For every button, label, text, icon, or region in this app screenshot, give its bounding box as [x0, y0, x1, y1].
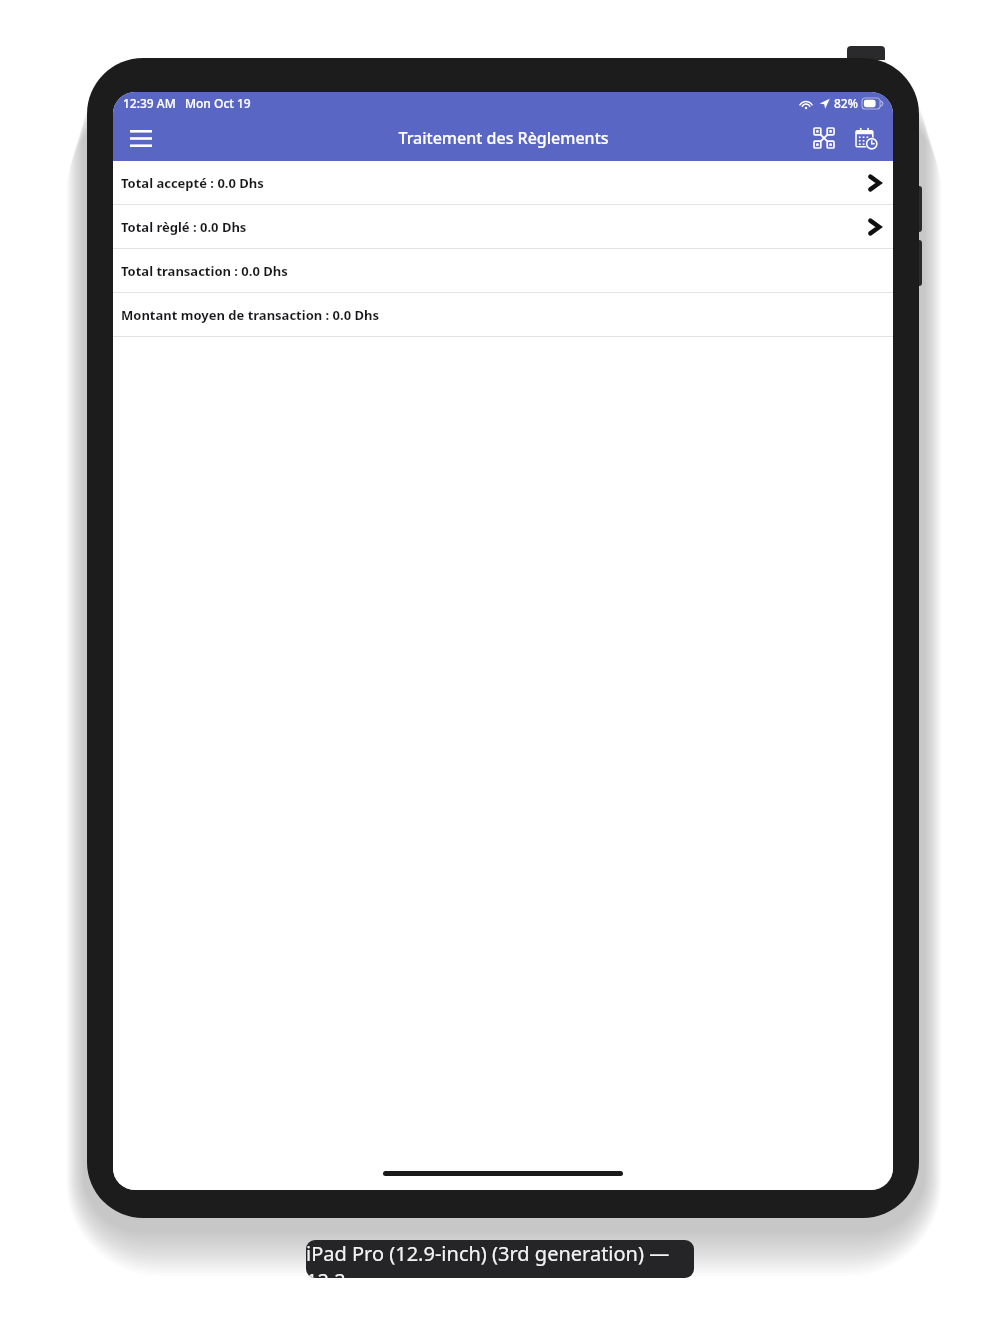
staticText: 12:39 AM: [123, 95, 176, 111]
button[interactable]: Total accepté : 0.0 Dhs: [113, 161, 893, 204]
button[interactable]: Total transaction : 0.0 Dhs: [113, 249, 893, 292]
staticText: iPad Pro (12.9-inch) (3rd generation) — …: [306, 1240, 694, 1278]
button[interactable]: Select date and time: [847, 119, 885, 157]
staticText: Montant moyen de transaction : 0.0 Dhs: [121, 306, 881, 324]
staticText: Mon Oct 19: [185, 95, 251, 111]
staticText: Total règlé : 0.0 Dhs: [121, 218, 868, 236]
button[interactable]: Total règlé : 0.0 Dhs: [113, 205, 893, 248]
button[interactable]: Open navigation menu: [121, 118, 161, 158]
staticText: Traitement des Règlements: [398, 127, 609, 149]
button[interactable]: Montant moyen de transaction : 0.0 Dhs: [113, 293, 893, 336]
staticText: Total accepté : 0.0 Dhs: [121, 174, 868, 192]
staticText: 82%: [834, 95, 858, 111]
staticText: Total transaction : 0.0 Dhs: [121, 262, 881, 280]
button[interactable]: Scan code: [805, 119, 843, 157]
